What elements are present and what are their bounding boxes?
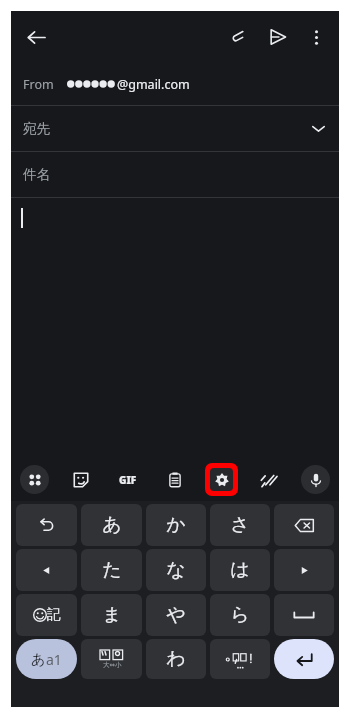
button[interactable]: Undo bbox=[16, 504, 77, 546]
button[interactable]: Switch input mode bbox=[16, 639, 77, 679]
staticText: 記 bbox=[47, 606, 61, 624]
button[interactable]: か bbox=[146, 504, 206, 546]
button[interactable]: Voice input bbox=[301, 465, 330, 494]
button[interactable]: 件名 bbox=[11, 152, 339, 197]
button[interactable]: Dakuten and size bbox=[81, 639, 142, 679]
staticText: か bbox=[166, 513, 186, 537]
staticText: 件名 bbox=[23, 166, 50, 183]
button[interactable]: Space bbox=[274, 594, 334, 636]
button[interactable]: た bbox=[81, 549, 142, 591]
button[interactable]: あ bbox=[81, 504, 142, 546]
staticText: a1 bbox=[46, 650, 62, 669]
button[interactable]: Emoji and symbols bbox=[16, 594, 77, 636]
button[interactable]: More options bbox=[298, 19, 334, 55]
staticText: GIF bbox=[119, 473, 137, 487]
button[interactable]: Clipboard bbox=[160, 465, 189, 494]
button[interactable]: Cursor right bbox=[274, 549, 334, 591]
button[interactable]: From bbox=[11, 63, 339, 105]
button[interactable]: GIF bbox=[113, 465, 142, 494]
button[interactable]: Stickers bbox=[66, 465, 95, 494]
button[interactable]: Apps bbox=[20, 465, 49, 494]
staticText: 宛先 bbox=[23, 120, 50, 137]
button[interactable]: Backspace bbox=[274, 504, 334, 546]
staticText: や bbox=[166, 603, 186, 627]
button[interactable]: さ bbox=[210, 504, 270, 546]
staticText: わ bbox=[166, 647, 186, 671]
button[interactable]: Cursor left bbox=[16, 549, 77, 591]
button[interactable]: Handwriting bbox=[254, 465, 283, 494]
button[interactable]: 宛先 bbox=[11, 106, 339, 151]
staticText: From bbox=[23, 76, 54, 93]
button[interactable]: は bbox=[210, 549, 270, 591]
button[interactable]: Settings bbox=[210, 468, 233, 491]
staticText: あ bbox=[31, 651, 46, 669]
staticText: ら bbox=[230, 603, 250, 627]
button[interactable]: Back bbox=[18, 19, 54, 55]
button[interactable]: ら bbox=[210, 594, 270, 636]
button[interactable]: Attach file bbox=[218, 17, 258, 57]
button[interactable]: や bbox=[146, 594, 206, 636]
button[interactable]: Punctuation bbox=[210, 639, 270, 679]
staticText: は bbox=[230, 558, 250, 582]
staticText: あ bbox=[102, 513, 122, 537]
staticText: な bbox=[166, 558, 186, 582]
staticText: た bbox=[102, 558, 122, 582]
button[interactable]: ま bbox=[81, 594, 142, 636]
staticText: さ bbox=[230, 513, 250, 537]
button[interactable]: わ bbox=[146, 639, 206, 679]
button[interactable]: な bbox=[146, 549, 206, 591]
staticText: @gmail.com bbox=[117, 76, 190, 93]
staticText: ま bbox=[102, 603, 122, 627]
button[interactable]: Enter bbox=[274, 639, 334, 679]
button[interactable]: Send bbox=[258, 17, 298, 57]
staticText: 大⇔小 bbox=[103, 661, 122, 669]
